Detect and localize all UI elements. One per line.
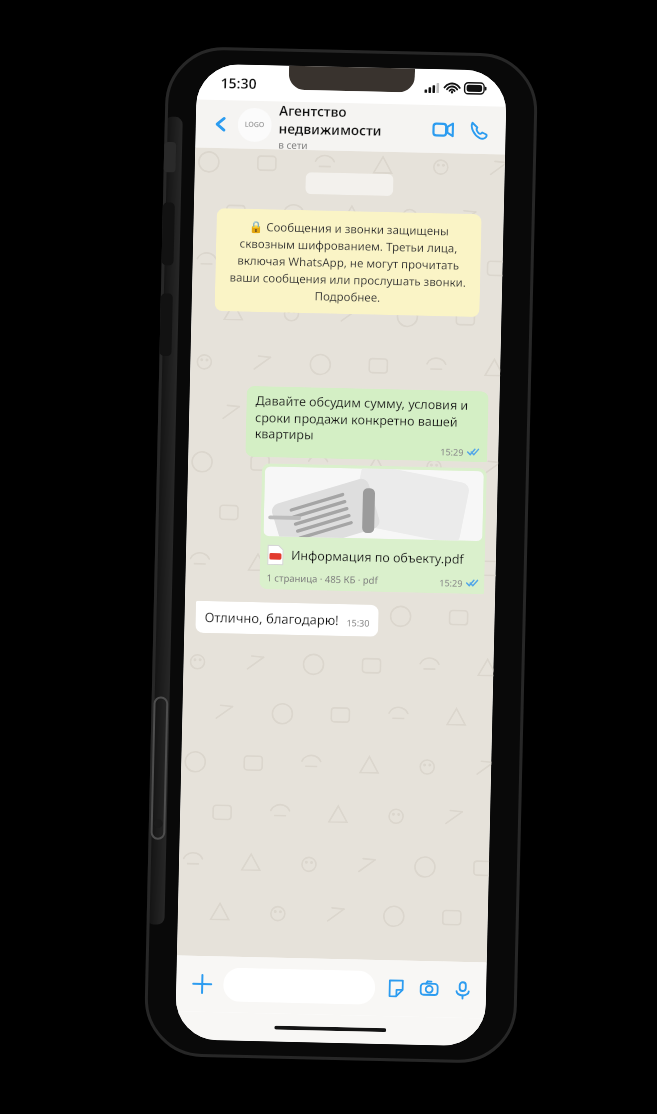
button[interactable]: Attach [187,969,218,999]
staticText: Информация по объекту.pdf [291,547,464,568]
button[interactable]: Video call [425,112,460,147]
staticText: 🔒 Сообщения и звонки защищены сквозным ш… [228,218,468,307]
button[interactable] [223,967,375,1005]
staticText: 15:29 [439,576,464,589]
staticText: 1 страница · 485 КБ · pdf [266,571,379,587]
button[interactable]: Информация по объекту.pdf [259,463,487,594]
staticText: LOGO [245,120,265,130]
staticText: 15:29 [440,445,464,458]
button[interactable]: Stickers [383,975,409,1002]
button[interactable]: Back [205,109,236,139]
staticText: Давайте обсудим сумму, условия и сроки п… [255,392,481,446]
staticText: Агентство недвижимости [278,101,426,141]
button[interactable]: 🔒 Сообщения и звонки защищены сквозным ш… [214,208,482,317]
button[interactable]: Camera [416,976,442,1002]
staticText: в сети [278,137,308,150]
staticText: 15:30 [346,616,371,629]
button[interactable]: Voice call [461,113,496,147]
staticText: 15:30 [220,73,257,93]
button[interactable]: Давайте обсудим сумму, условия и сроки п… [245,386,489,462]
staticText: Отлично, благодарю! [204,608,340,629]
button[interactable]: LOGO [237,101,426,153]
button[interactable]: Voice message [449,977,475,1003]
button[interactable]: Отлично, благодарю! [195,601,379,637]
